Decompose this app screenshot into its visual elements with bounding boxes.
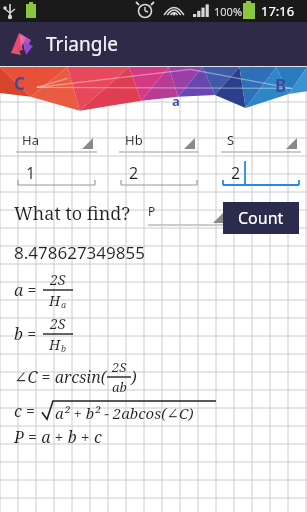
staticText: a² + b² − 2abcos(∠C) (55, 403, 194, 423)
button[interactable]: Ha (0, 128, 103, 158)
staticText: What to find? (14, 201, 130, 226)
button[interactable]: 1 (0, 160, 103, 192)
button[interactable]: S (205, 128, 307, 158)
staticText: 1 (26, 162, 36, 184)
staticText: 2 (129, 162, 139, 184)
button[interactable]: 2 (103, 160, 205, 192)
staticText: c = (14, 400, 40, 422)
staticText: b (61, 342, 67, 354)
staticText: P (148, 203, 156, 219)
staticText: Hb (125, 131, 143, 149)
staticText: b = (14, 323, 37, 345)
staticText: ) (131, 366, 137, 388)
staticText: Ha (22, 131, 39, 149)
button[interactable]: P (148, 201, 228, 231)
staticText: P = a + b + c (14, 426, 102, 448)
button[interactable]: Hb (103, 128, 205, 158)
staticText: H (49, 291, 61, 310)
staticText: S (227, 131, 235, 149)
staticText: a = (14, 279, 37, 301)
staticText: Triangle (46, 31, 119, 57)
staticText: ∠C = arcsin( (14, 366, 107, 388)
staticText: 2S (112, 358, 127, 376)
staticText: C (14, 72, 25, 95)
staticText: 100% (214, 4, 243, 19)
staticText: B (275, 74, 287, 97)
staticText: a (61, 298, 67, 310)
staticText: H (49, 335, 61, 354)
staticText: ab (112, 378, 127, 396)
staticText: 2S (50, 270, 66, 289)
staticText: Count (238, 207, 284, 229)
staticText: 2 (231, 162, 241, 184)
staticText: a (172, 92, 180, 110)
button[interactable]: 2 (205, 160, 307, 192)
staticText: 17:16 (261, 2, 295, 20)
button[interactable]: Count (223, 202, 299, 234)
staticText: 8.478627349855 (14, 241, 145, 264)
staticText: 2S (50, 314, 66, 333)
